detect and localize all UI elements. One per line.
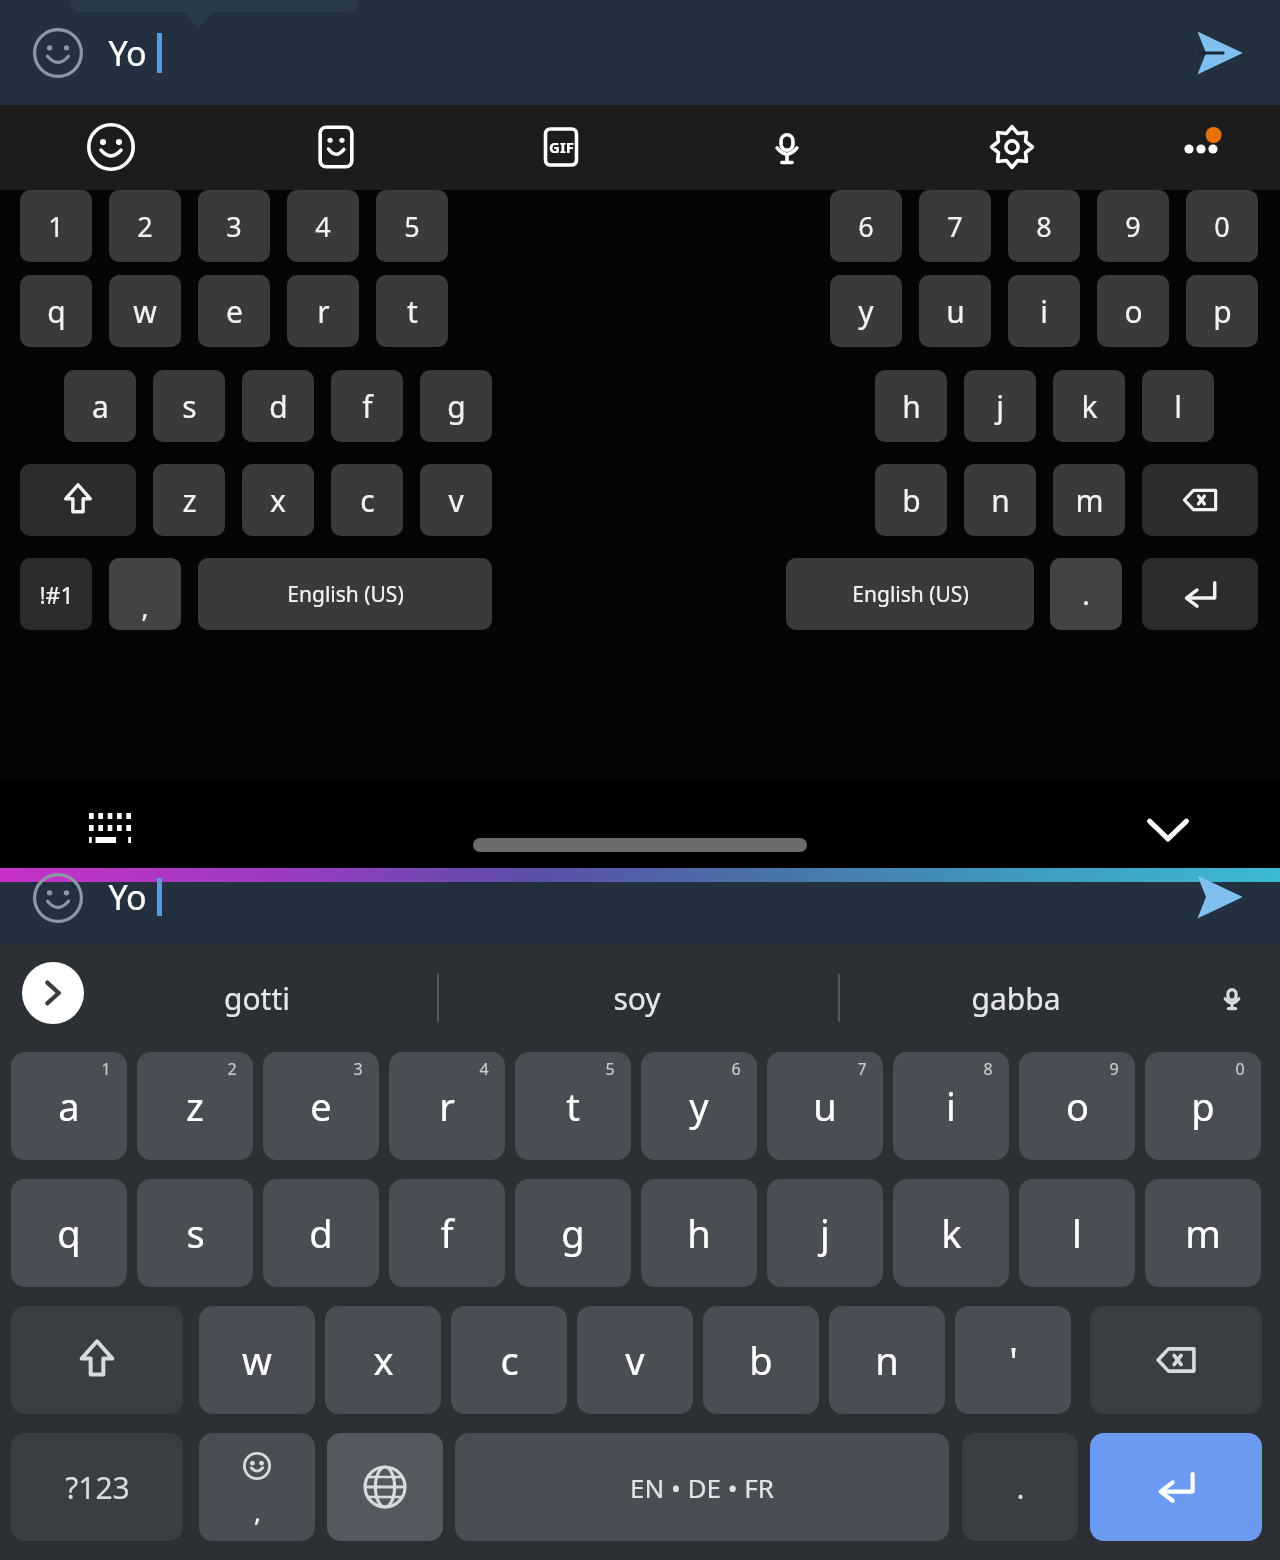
button[interactable]: k — [1053, 370, 1125, 442]
button[interactable]: English (US) — [786, 558, 1034, 630]
button[interactable]: o — [1019, 1052, 1135, 1160]
button[interactable]: m — [1145, 1179, 1261, 1287]
button[interactable]: f — [331, 370, 403, 442]
button[interactable]: Hide keyboard — [1130, 805, 1206, 855]
button[interactable]: Voice input — [751, 111, 823, 183]
button[interactable]: 7 — [919, 190, 991, 262]
button[interactable]: o — [1097, 275, 1169, 347]
button[interactable]: y — [641, 1052, 757, 1160]
button[interactable]: y — [830, 275, 902, 347]
button[interactable]: English (US) — [198, 558, 492, 630]
button[interactable]: b — [703, 1306, 819, 1414]
button[interactable]: !#1 — [20, 558, 92, 630]
button[interactable]: j — [767, 1179, 883, 1287]
button[interactable]: s — [153, 370, 225, 442]
button[interactable]: Change language — [327, 1433, 443, 1541]
button[interactable]: n — [829, 1306, 945, 1414]
button[interactable]: w — [199, 1306, 315, 1414]
button[interactable]: x — [242, 464, 314, 536]
button[interactable]: e — [263, 1052, 379, 1160]
button[interactable]: a — [64, 370, 136, 442]
button[interactable]: Voice input — [1204, 970, 1260, 1026]
button[interactable]: gotti — [107, 944, 407, 1052]
button[interactable]: ' — [955, 1306, 1071, 1414]
button[interactable]: gabba — [866, 944, 1166, 1052]
button[interactable]: c — [451, 1306, 567, 1414]
button[interactable]: k — [893, 1179, 1009, 1287]
button[interactable]: Switch keyboard — [78, 806, 142, 850]
button[interactable]: Enter — [1090, 1433, 1262, 1541]
button[interactable]: Backspace — [1090, 1306, 1262, 1414]
button[interactable]: Backspace — [1142, 464, 1258, 536]
button[interactable]: Expand toolbar — [22, 962, 84, 1024]
staticText: !#1 — [39, 579, 74, 610]
button[interactable]: 3 — [198, 190, 270, 262]
button[interactable]: 8 — [1008, 190, 1080, 262]
button[interactable]: Emoji — [30, 25, 86, 81]
button[interactable]: e — [198, 275, 270, 347]
button[interactable]: u — [919, 275, 991, 347]
button[interactable]: Emoji — [199, 1433, 315, 1541]
button[interactable]: p — [1186, 275, 1258, 347]
button[interactable]: i — [893, 1052, 1009, 1160]
button[interactable]: r — [287, 275, 359, 347]
button[interactable]: v — [577, 1306, 693, 1414]
button[interactable]: 4 — [287, 190, 359, 262]
button[interactable]: Send — [1184, 18, 1254, 88]
button[interactable]: soy — [487, 944, 787, 1052]
button[interactable]: 5 — [376, 190, 448, 262]
staticText: 1 — [48, 208, 64, 245]
button[interactable]: t — [376, 275, 448, 347]
button[interactable]: 0 — [1186, 190, 1258, 262]
button[interactable]: h — [641, 1179, 757, 1287]
button[interactable]: l — [1142, 370, 1214, 442]
button[interactable]: q — [11, 1179, 127, 1287]
button[interactable]: GIF — [525, 111, 597, 183]
button[interactable]: d — [242, 370, 314, 442]
button[interactable]: j — [964, 370, 1036, 442]
button[interactable]: Stickers — [300, 111, 372, 183]
button[interactable]: Shift — [11, 1306, 183, 1414]
button[interactable]: u — [767, 1052, 883, 1160]
button[interactable]: d — [263, 1179, 379, 1287]
button[interactable]: 1 — [20, 190, 92, 262]
button[interactable]: r — [389, 1052, 505, 1160]
button[interactable]: f — [389, 1179, 505, 1287]
button[interactable]: 2 — [109, 190, 181, 262]
button[interactable]: , — [109, 558, 181, 630]
button[interactable]: Settings — [976, 111, 1048, 183]
button[interactable]: v — [420, 464, 492, 536]
button[interactable]: c — [331, 464, 403, 536]
button[interactable]: b — [875, 464, 947, 536]
button[interactable]: z — [137, 1052, 253, 1160]
button[interactable]: i — [1008, 275, 1080, 347]
button[interactable]: Send — [1184, 866, 1254, 928]
button[interactable]: 6 — [830, 190, 902, 262]
button[interactable]: p — [1145, 1052, 1261, 1160]
button[interactable]: h — [875, 370, 947, 442]
button[interactable]: Enter — [1142, 558, 1258, 630]
button[interactable]: m — [1053, 464, 1125, 536]
button[interactable]: x — [325, 1306, 441, 1414]
button[interactable]: ?123 — [11, 1433, 183, 1541]
button[interactable]: . — [1050, 558, 1122, 630]
button[interactable]: s — [137, 1179, 253, 1287]
button[interactable]: g — [420, 370, 492, 442]
staticText: 8 — [983, 1058, 993, 1080]
button[interactable]: a — [11, 1052, 127, 1160]
button[interactable]: z — [153, 464, 225, 536]
staticText: t — [407, 291, 418, 332]
button[interactable]: Emoji — [30, 870, 86, 926]
button[interactable]: l — [1019, 1179, 1135, 1287]
button[interactable]: 9 — [1097, 190, 1169, 262]
button[interactable]: n — [964, 464, 1036, 536]
button[interactable]: More options — [1165, 111, 1237, 183]
button[interactable]: g — [515, 1179, 631, 1287]
button[interactable]: . — [962, 1433, 1078, 1541]
button[interactable]: w — [109, 275, 181, 347]
button[interactable]: t — [515, 1052, 631, 1160]
button[interactable]: EN • DE • FR — [455, 1433, 949, 1541]
button[interactable]: q — [20, 275, 92, 347]
button[interactable]: Emoji — [75, 111, 147, 183]
button[interactable]: Shift — [20, 464, 136, 536]
